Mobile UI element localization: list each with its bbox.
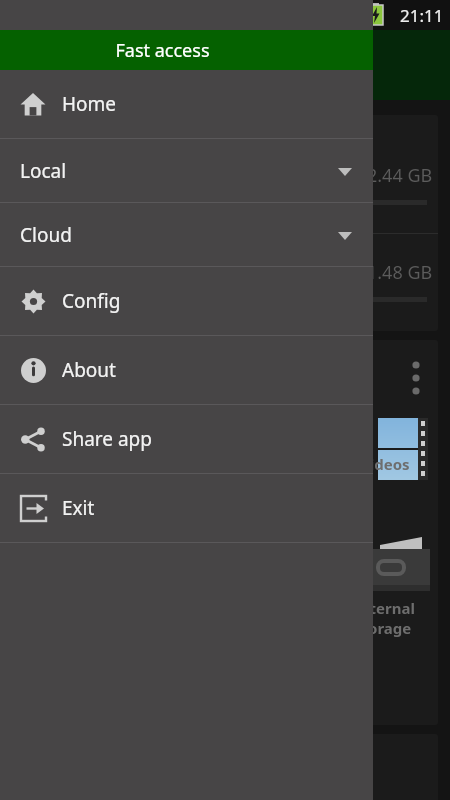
staticText: 2.44 GB	[367, 163, 433, 188]
staticText: Cloud	[20, 222, 72, 248]
staticText: Share app	[62, 426, 152, 452]
button[interactable]: Local	[0, 139, 373, 202]
button[interactable]: About	[0, 336, 373, 404]
staticText: Local	[20, 158, 67, 184]
staticText: Videos	[360, 454, 410, 474]
staticText: Exit	[62, 495, 95, 521]
button[interactable]: Home	[0, 70, 373, 138]
button[interactable]: Share app	[0, 405, 373, 473]
button[interactable]: Cloud	[0, 203, 373, 266]
button[interactable]: Config	[0, 267, 373, 335]
staticText: Internal storage	[354, 598, 415, 638]
staticText: Fast access	[115, 38, 210, 63]
staticText: Home	[62, 91, 117, 117]
staticText: 21:11	[400, 4, 444, 27]
staticText: Config	[62, 288, 121, 314]
button[interactable]: Exit	[0, 474, 373, 542]
staticText: About	[62, 357, 116, 383]
staticText: 1.48 GB	[367, 260, 433, 285]
